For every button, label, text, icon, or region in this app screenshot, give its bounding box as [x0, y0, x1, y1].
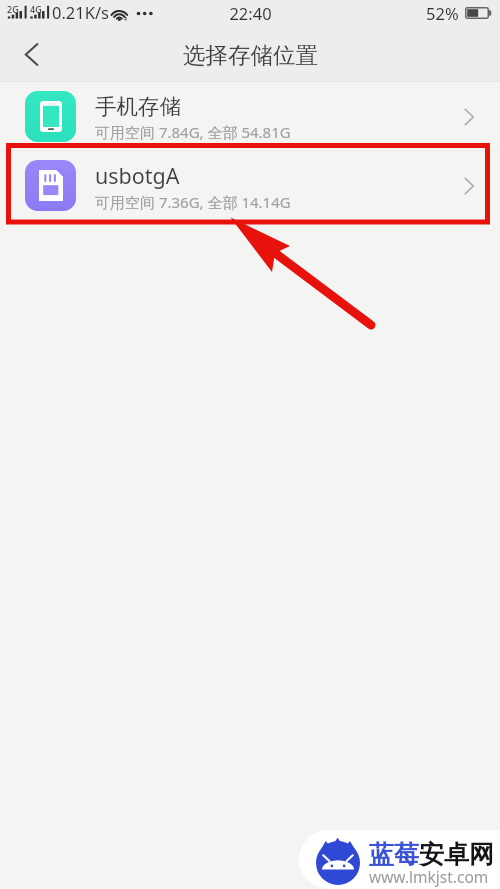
staticText: 安卓网 [419, 839, 494, 870]
staticText: 4G [30, 3, 42, 15]
staticText: 蓝莓 [369, 839, 419, 870]
staticText: 手机存储 [95, 93, 181, 120]
staticText: 22:40 [229, 2, 272, 24]
staticText: 可用空间 7.36G, 全部 14.14G [95, 192, 291, 212]
button[interactable]: usbotgA [0, 151, 500, 219]
button[interactable]: 返回 [8, 32, 56, 80]
staticText: 0.21K/s [52, 1, 109, 23]
button[interactable]: 手机存储 [0, 82, 500, 150]
staticText: 可用空间 7.84G, 全部 54.81G [95, 122, 291, 142]
staticText: www.lmkjst.com [369, 866, 489, 887]
staticText: 选择存储位置 [183, 41, 318, 69]
staticText: usbotgA [95, 161, 180, 190]
staticText: 2G [7, 3, 19, 15]
staticText: 52% [426, 2, 459, 24]
